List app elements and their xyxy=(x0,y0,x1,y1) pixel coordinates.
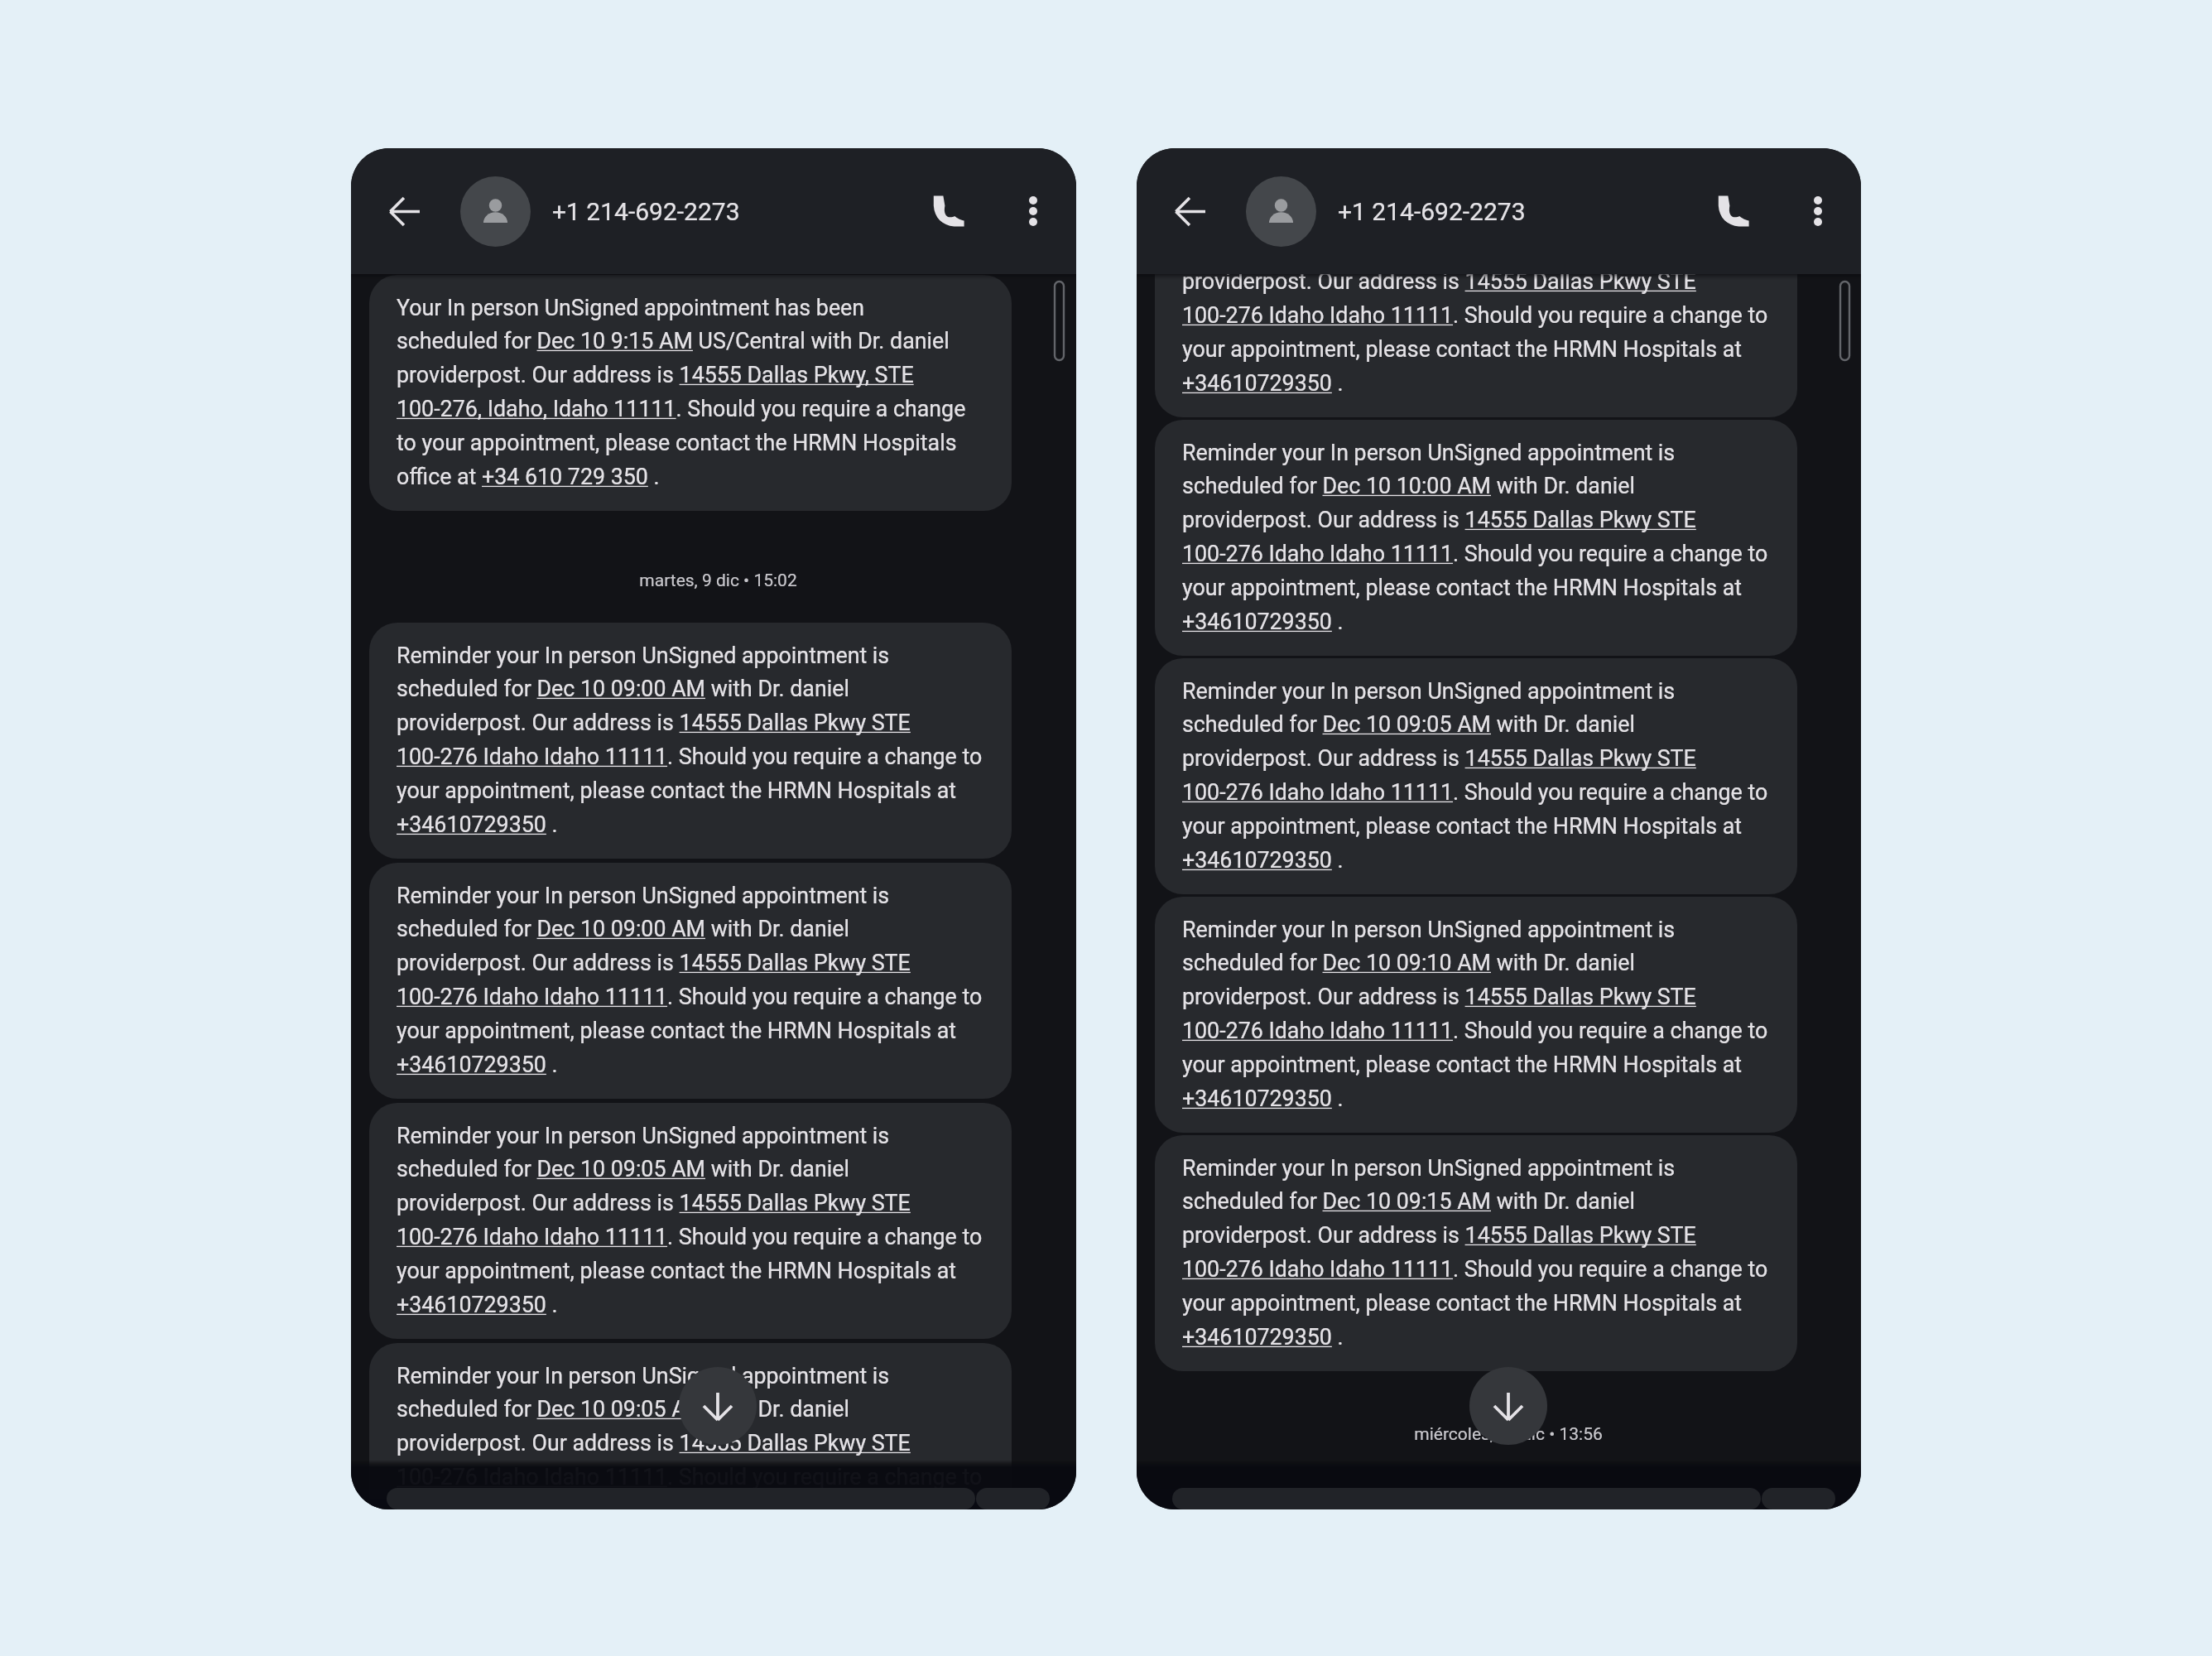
button[interactable]: More options xyxy=(1795,188,1841,234)
staticText: Reminder your In person UnSigned appoint… xyxy=(1182,1155,1768,1350)
staticText: Reminder your In person UnSigned appoint… xyxy=(1182,440,1768,635)
button[interactable]: Reminder your In person UnSigned appoint… xyxy=(1155,658,1797,894)
staticText: Reminder your In person UnSigned appoint… xyxy=(397,1123,983,1318)
button[interactable]: Scroll to bottom xyxy=(1469,1367,1547,1445)
button[interactable]: Reminder your In person UnSigned appoint… xyxy=(1155,181,1797,417)
button[interactable]: Reminder your In person UnSigned appoint… xyxy=(369,863,1012,1099)
staticText: miércoles, 10 dic • 13:56 xyxy=(1414,1424,1603,1445)
button[interactable]: Reminder your In person UnSigned appoint… xyxy=(1155,1135,1797,1371)
staticText: Reminder your In person UnSigned appoint… xyxy=(397,883,983,1078)
staticText: Reminder your In person UnSigned appoint… xyxy=(1182,678,1768,874)
staticText: +1 214-692-2273 xyxy=(552,197,740,226)
button[interactable]: Your In person UnSigned appointment has … xyxy=(369,275,1012,511)
staticText: Your In person UnSigned appointment has … xyxy=(397,295,966,490)
staticText: +1 214-692-2273 xyxy=(1338,197,1526,226)
button[interactable]: Contact photo xyxy=(1246,176,1316,247)
button[interactable]: Send xyxy=(1762,1488,1835,1509)
staticText: Reminder your In person UnSigned appoint… xyxy=(1182,917,1768,1112)
staticText: Reminder your In person UnSigned appoint… xyxy=(397,643,983,838)
button[interactable]: Reminder your In person UnSigned appoint… xyxy=(369,1103,1012,1339)
button[interactable]: Back xyxy=(375,182,433,240)
button[interactable]: Send xyxy=(976,1488,1050,1509)
button[interactable]: Call xyxy=(1702,180,1765,243)
staticText: Reminder your In person UnSigned appoint… xyxy=(397,1363,983,1509)
button[interactable]: Reminder your In person UnSigned appoint… xyxy=(1155,420,1797,656)
button[interactable]: Call xyxy=(917,180,980,243)
button[interactable]: Back xyxy=(1161,182,1219,240)
button[interactable]: Reminder your In person UnSigned appoint… xyxy=(369,623,1012,859)
button[interactable]: More options xyxy=(1010,188,1056,234)
button[interactable]: Reminder your In person UnSigned appoint… xyxy=(369,1343,1012,1509)
staticText: martes, 9 dic • 15:02 xyxy=(639,570,797,591)
staticText: Reminder your In person UnSigned appoint… xyxy=(1182,201,1768,397)
button[interactable]: Scroll to bottom xyxy=(679,1367,757,1445)
button[interactable]: Contact photo xyxy=(460,176,531,247)
button[interactable]: Reminder your In person UnSigned appoint… xyxy=(1155,897,1797,1133)
